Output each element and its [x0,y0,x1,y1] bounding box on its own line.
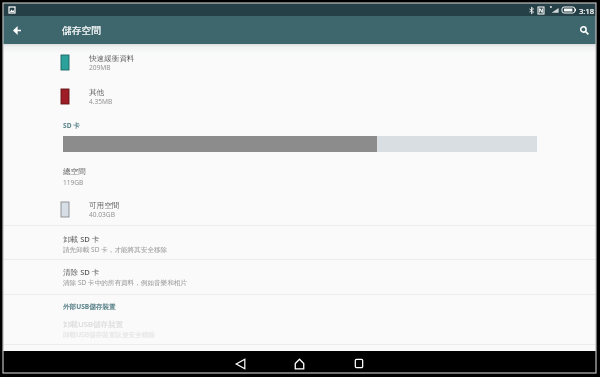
staticText: 卸載USB儲存裝置 [63,319,124,329]
staticText: 儲存空間 [62,25,102,37]
staticText: 209MB [89,63,111,72]
button[interactable]: 其他 [3,88,596,107]
button[interactable]: 清除 SD 卡 [63,267,600,286]
staticText: 總空間 [63,167,86,177]
button[interactable]: 可用空間 [3,201,596,220]
staticText: 4.35MB [89,97,113,106]
staticText: 可用空間 [89,201,120,211]
staticText: 3:18 [579,6,595,16]
staticText: 請先卸載 SD 卡，才能將其安全移除 [63,245,168,254]
button[interactable]: 快速緩衝資料 [3,54,596,73]
staticText: 清除 SD 卡中的所有資料，例如音樂和相片 [63,278,187,287]
staticText: 119GB [63,178,84,187]
button[interactable]: Back [6,19,28,41]
button[interactable]: 卸載 SD 卡 [63,234,600,253]
staticText: 卸載USB儲存裝置以便安全移除 [63,330,155,339]
button[interactable]: Recent apps [347,352,370,375]
staticText: 清除 SD 卡 [63,267,100,277]
staticText: 外部USB儲存裝置 [63,302,116,311]
button[interactable]: Search [573,19,595,41]
staticText: 卸載 SD 卡 [63,234,100,244]
button[interactable]: 總空間 [63,167,600,186]
button[interactable]: Home [288,352,311,375]
button[interactable]: Back [229,352,252,375]
staticText: 其他 [89,88,105,98]
staticText: SD 卡 [63,121,80,130]
staticText: 40.03GB [89,210,115,219]
staticText: 快速緩衝資料 [89,54,135,64]
